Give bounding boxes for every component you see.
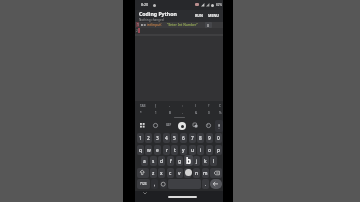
staticText: e <box>156 147 159 154</box>
staticText: - <box>169 104 170 108</box>
staticText: y <box>182 147 185 154</box>
button[interactable]: x <box>158 168 165 178</box>
button[interactable]: b <box>184 155 193 166</box>
staticText: 7 <box>191 135 194 142</box>
staticText: d <box>160 158 163 165</box>
button[interactable]: 7 <box>189 133 196 143</box>
button[interactable]: n <box>193 168 200 178</box>
button[interactable]: MENU <box>206 12 221 19</box>
staticText: 8 <box>199 135 202 142</box>
staticText: ?123 <box>140 182 147 186</box>
staticText: )) <box>207 23 210 28</box>
button[interactable]: l <box>210 156 217 166</box>
staticText: { <box>155 104 157 108</box>
button[interactable]: a <box>141 156 148 166</box>
staticText: MENU <box>208 13 220 18</box>
staticText: a <box>143 158 146 165</box>
button[interactable]: 8 <box>197 133 204 143</box>
button[interactable]: t <box>171 145 178 155</box>
staticText: k <box>204 158 207 165</box>
button[interactable]: v <box>176 168 183 178</box>
button[interactable]: u <box>189 145 196 155</box>
button[interactable]: , <box>151 179 158 189</box>
button[interactable]: 3 <box>154 133 161 143</box>
button[interactable]: e <box>154 145 161 155</box>
staticText: 6 <box>182 135 185 142</box>
button[interactable]: z <box>150 168 157 178</box>
staticText: 1 <box>155 111 157 115</box>
button[interactable]: p <box>215 145 222 155</box>
button[interactable]: 4 <box>163 133 170 143</box>
staticText: GIF <box>166 123 172 127</box>
staticText: b <box>186 170 189 177</box>
staticText: % <box>219 111 222 115</box>
button[interactable] <box>210 168 222 178</box>
button[interactable]: m <box>202 168 209 178</box>
staticText: j <box>196 158 198 165</box>
button[interactable]: 2 <box>145 133 152 143</box>
staticText: c <box>169 170 172 177</box>
button[interactable]: 1 <box>137 133 144 143</box>
staticText: x <box>160 170 163 177</box>
staticText: l <box>213 158 215 165</box>
button[interactable] <box>215 120 223 132</box>
staticText: : <box>182 104 183 108</box>
staticText: & <box>195 111 198 115</box>
staticText: 2 <box>136 28 138 33</box>
button[interactable]: g <box>176 156 183 166</box>
button[interactable]: RUN <box>194 12 204 19</box>
staticText: C <box>219 104 221 108</box>
staticText: m <box>203 170 208 177</box>
button[interactable]: 0 <box>215 133 222 143</box>
staticText: 5 <box>173 135 176 142</box>
staticText: Coding Python <box>139 10 177 17</box>
button[interactable]: ?123 <box>137 179 150 189</box>
button[interactable]: c <box>167 168 174 178</box>
staticText: ? <box>208 104 210 108</box>
button[interactable]: i <box>197 145 204 155</box>
button[interactable] <box>178 122 186 130</box>
button[interactable]: r <box>163 145 170 155</box>
staticText: B <box>169 111 171 115</box>
button[interactable] <box>206 123 211 128</box>
staticText: n <box>195 170 198 177</box>
button[interactable] <box>153 123 158 128</box>
staticText: - <box>182 111 183 115</box>
staticText: 1 <box>139 135 142 142</box>
button[interactable]: y <box>180 145 187 155</box>
button[interactable]: j <box>193 156 200 166</box>
button[interactable]: s <box>150 156 157 166</box>
staticText: Nothing changed <box>139 18 164 22</box>
staticText: f <box>170 158 172 165</box>
staticText: 0 <box>217 135 220 142</box>
button[interactable]: b <box>184 168 191 178</box>
button[interactable]: 9 <box>206 133 213 143</box>
staticText: p <box>217 147 220 154</box>
staticText: 9 <box>208 135 211 142</box>
button[interactable] <box>193 123 198 128</box>
button[interactable]: f <box>167 156 174 166</box>
button[interactable]: w <box>145 145 152 155</box>
button[interactable]: d <box>158 156 165 166</box>
staticText: x = <box>141 22 146 27</box>
staticText: TAB <box>140 104 146 108</box>
staticText: t <box>174 147 176 154</box>
button[interactable] <box>140 123 145 128</box>
button[interactable] <box>160 179 167 189</box>
button[interactable] <box>137 168 149 178</box>
button[interactable]: . <box>202 179 209 189</box>
button[interactable]: k <box>202 156 209 166</box>
button[interactable] <box>210 179 222 189</box>
staticText: o <box>208 147 211 154</box>
button[interactable]: 6 <box>180 133 187 143</box>
button[interactable]: q <box>137 145 144 155</box>
staticText: v <box>178 170 181 177</box>
button[interactable]: 5 <box>171 133 178 143</box>
staticText: "Enter Int Number" <box>167 22 198 27</box>
staticText: u <box>191 147 194 154</box>
button[interactable]: o <box>206 145 213 155</box>
staticText: , <box>154 181 156 188</box>
staticText: q <box>139 147 142 154</box>
staticText: s <box>152 158 155 165</box>
